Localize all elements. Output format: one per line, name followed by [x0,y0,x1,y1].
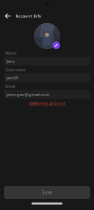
button[interactable]: Back [3,11,13,21]
button[interactable]: Delete my account [0,99,94,109]
staticText: Account Info [15,13,40,19]
staticText: jane01 [7,75,19,80]
staticText: jmorgan@gmail.com [7,91,50,97]
staticText: Email [5,83,15,89]
staticText: Name [5,50,16,56]
button[interactable]: Save [4,186,90,199]
staticText: Jane [7,58,15,64]
staticText: Save [41,189,52,196]
staticText: Username [5,67,25,72]
staticText: Delete my account [28,101,65,107]
